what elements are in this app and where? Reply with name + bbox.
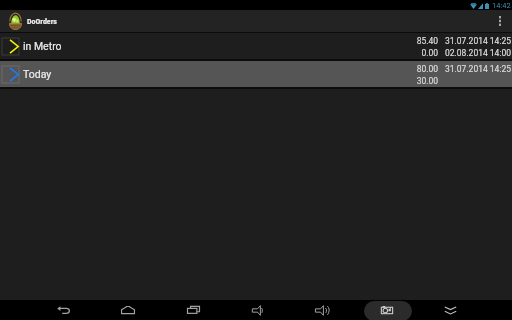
staticText: Today — [23, 68, 52, 80]
staticText: 30.00 — [416, 76, 438, 86]
staticText: 31.07.2014 14:25 — [443, 36, 511, 46]
button[interactable]: Take screenshot — [371, 300, 403, 320]
button[interactable]: Take screenshot — [364, 301, 412, 320]
staticText: 80.00 — [416, 64, 438, 74]
button[interactable]: in Metro — [0, 33, 512, 59]
button[interactable]: More options — [489, 10, 511, 32]
staticText: 14:42 — [492, 1, 511, 10]
staticText: 31.07.2014 14:25 — [443, 64, 511, 74]
staticText: DoOrders — [27, 17, 57, 26]
button[interactable]: Home — [112, 300, 144, 320]
staticText: 85.40 — [416, 36, 438, 46]
staticText: 02.08.2014 14:00 — [443, 48, 511, 58]
button[interactable]: Hide navigation bar — [434, 300, 466, 320]
staticText: 0.00 — [416, 48, 438, 58]
button[interactable]: Today — [0, 61, 512, 87]
staticText: in Metro — [23, 40, 62, 52]
button[interactable]: Back — [47, 300, 79, 320]
button[interactable]: Volume up — [306, 300, 338, 320]
button[interactable]: Recent apps — [177, 300, 209, 320]
button[interactable]: Volume down — [241, 300, 273, 320]
